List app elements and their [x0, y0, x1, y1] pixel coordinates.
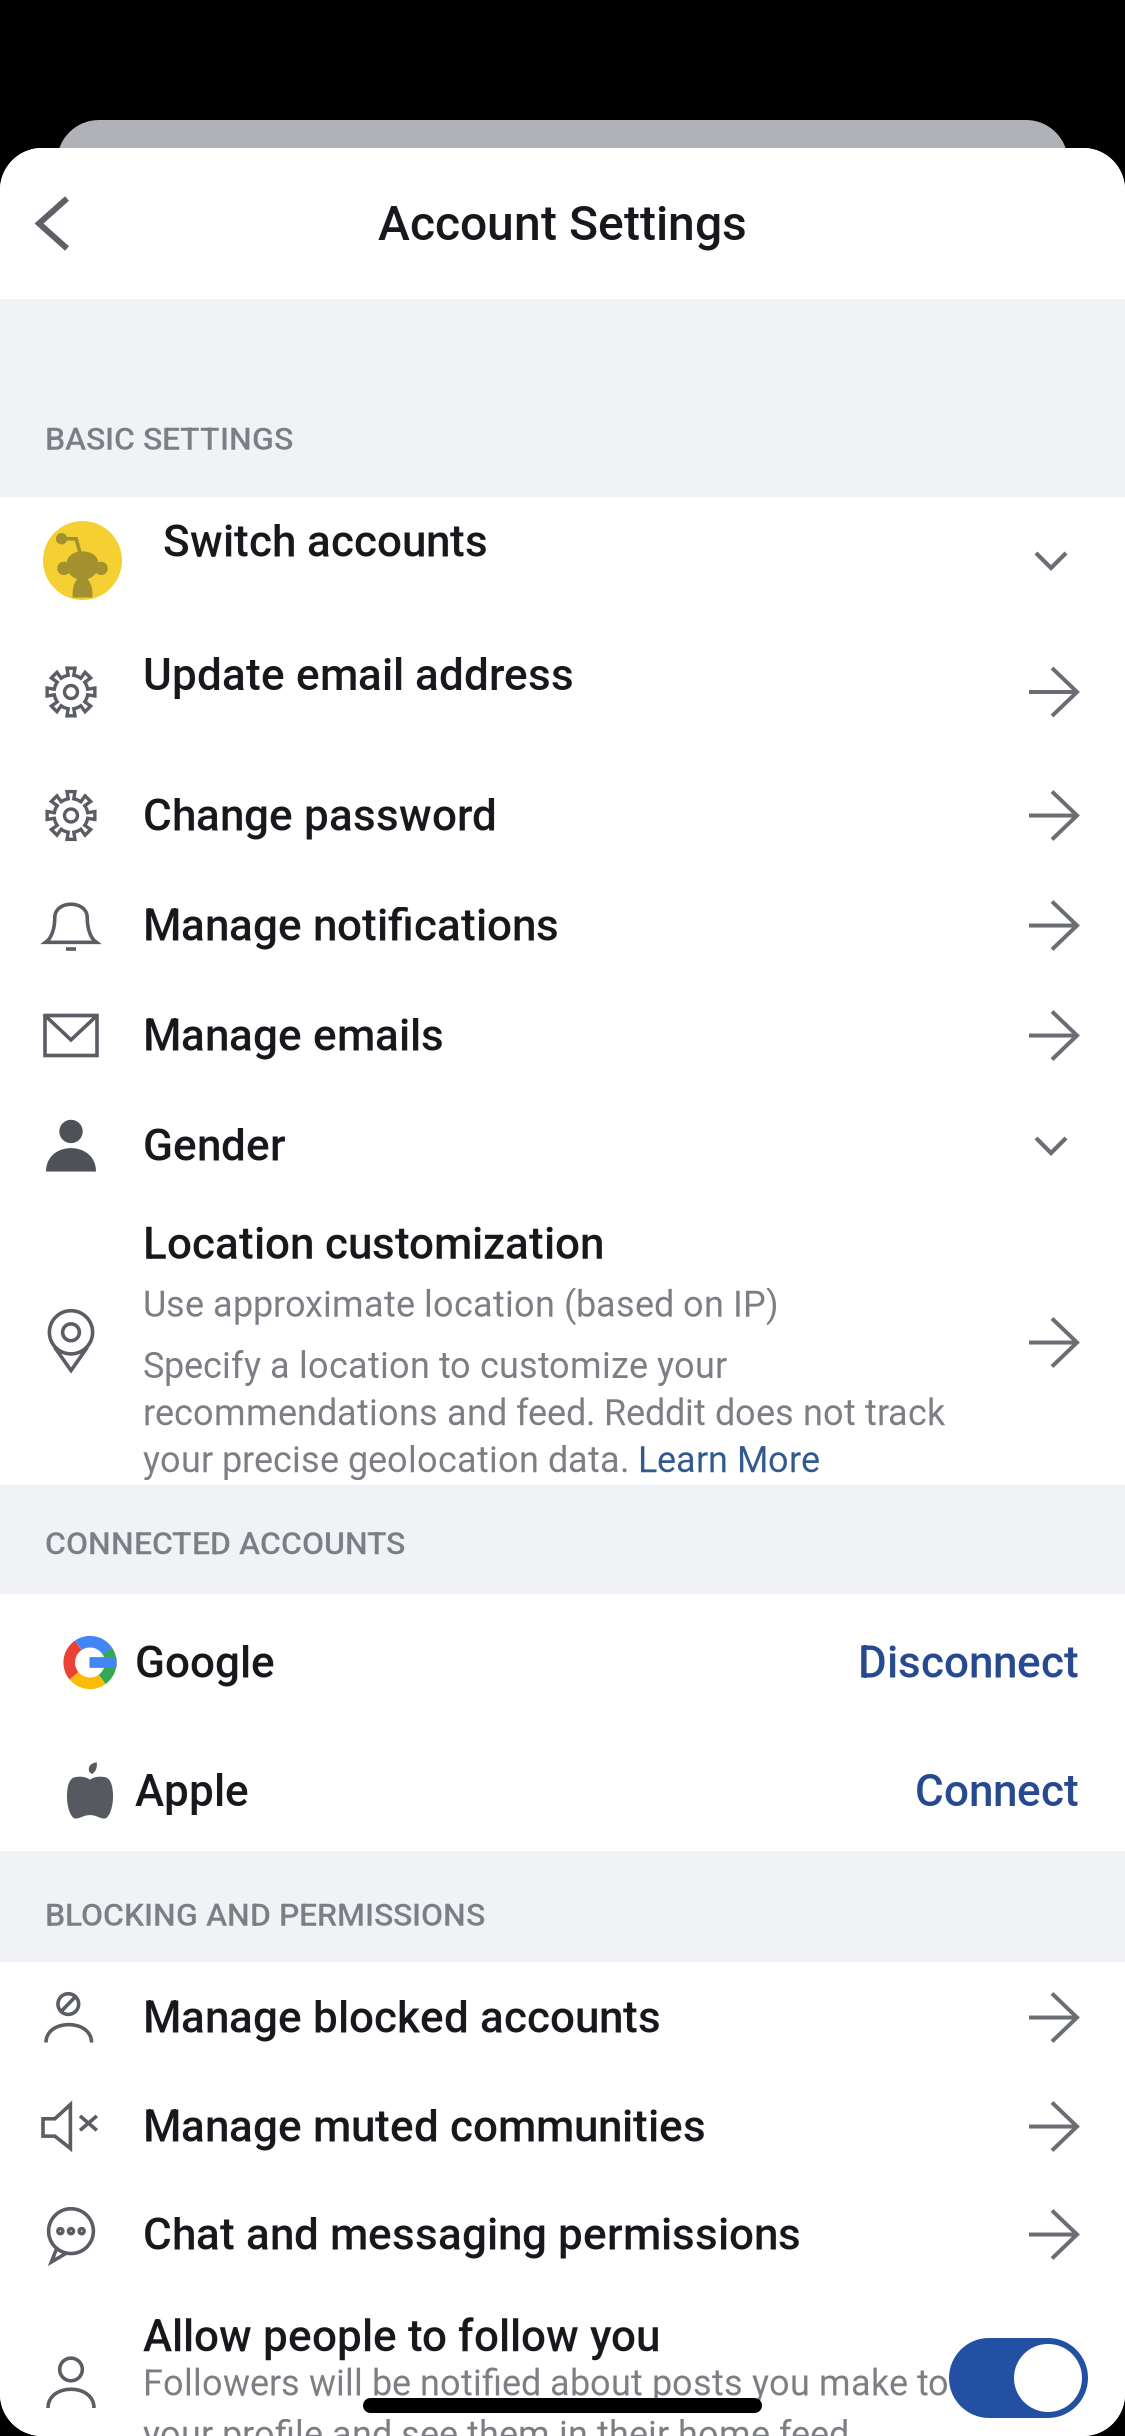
staticText: Allow people to follow you: [143, 2310, 660, 2362]
staticText: Use approximate location (based on IP): [143, 1283, 779, 1326]
staticText: CONNECTED ACCOUNTS: [45, 1524, 405, 1562]
button[interactable]: Manage emails: [0, 980, 1125, 1090]
staticText: Followers will be notified about posts y…: [143, 2362, 949, 2436]
staticText: Update email address: [143, 649, 574, 701]
staticText: Account Settings: [378, 195, 747, 252]
staticText: Change password: [143, 790, 497, 841]
button[interactable]: Chat and messaging permissions: [0, 2180, 1125, 2288]
staticText: Apple: [135, 1765, 249, 1817]
staticText: Manage muted communities: [143, 2101, 706, 2152]
button[interactable]: Apple: [0, 1731, 1125, 1851]
staticText: Manage blocked accounts: [143, 1992, 661, 2043]
staticText: Disconnect: [858, 1637, 1079, 1688]
button[interactable]: Location customization: [0, 1200, 1125, 1484]
staticText: Google: [135, 1637, 275, 1688]
staticText: Manage emails: [143, 1010, 444, 1061]
staticText: Switch accounts: [163, 516, 488, 567]
button[interactable]: Manage muted communities: [0, 2072, 1125, 2180]
button[interactable]: Allow people to follow you: [0, 2288, 1125, 2436]
staticText: BASIC SETTINGS: [45, 420, 293, 457]
button[interactable]: Google: [0, 1594, 1125, 1731]
staticText: Manage notifications: [143, 900, 559, 951]
button[interactable]: Change password: [0, 760, 1125, 870]
button[interactable]: Back: [0, 148, 104, 298]
button[interactable]: Manage blocked accounts: [0, 1962, 1125, 2072]
button[interactable]: Switch accounts: [0, 497, 1125, 623]
button[interactable]: Manage notifications: [0, 870, 1125, 980]
button[interactable]: Update email address: [0, 623, 1125, 760]
staticText: Chat and messaging permissions: [143, 2209, 801, 2260]
staticText: BLOCKING AND PERMISSIONS: [45, 1896, 485, 1933]
staticText: Gender: [143, 1120, 286, 1171]
staticText: Specify a location to customize your rec…: [143, 1345, 945, 1481]
staticText: Location customization: [143, 1218, 604, 1269]
button[interactable]: Gender: [0, 1090, 1125, 1200]
staticText: Connect: [915, 1765, 1079, 1817]
